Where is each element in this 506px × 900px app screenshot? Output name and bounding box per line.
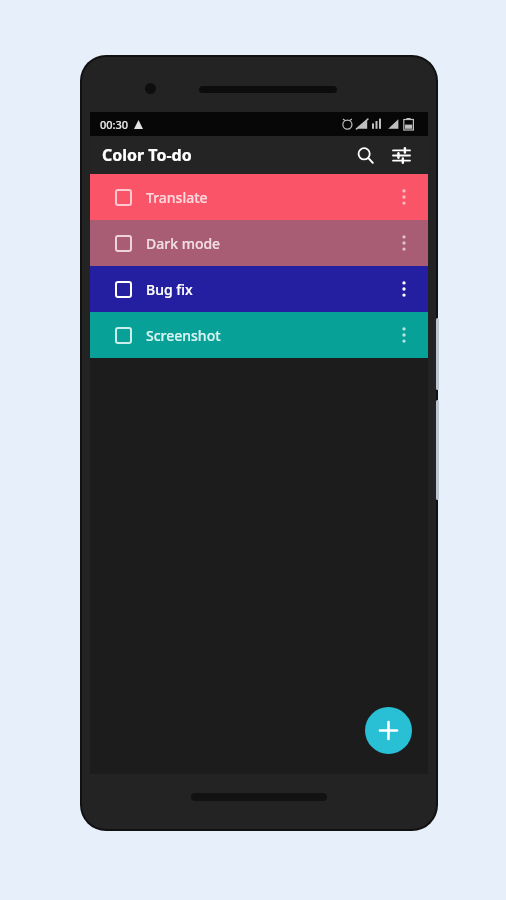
button[interactable]: Toggle Bug fix <box>90 266 428 312</box>
button[interactable]: Toggle Dark mode <box>108 228 138 258</box>
button[interactable]: Toggle Screenshot <box>108 320 138 350</box>
button[interactable]: Add task <box>365 707 412 754</box>
staticText: Color To-do <box>102 144 192 166</box>
staticText: Bug fix <box>146 280 193 299</box>
button[interactable]: Toggle Screenshot <box>90 312 428 358</box>
button[interactable]: Toggle Translate <box>90 174 428 220</box>
staticText: Translate <box>146 188 208 207</box>
button[interactable]: Toggle Dark mode <box>90 220 428 266</box>
staticText: 00:30 <box>100 117 129 132</box>
button[interactable]: More options for Translate <box>386 179 422 215</box>
button[interactable]: Filter <box>384 138 418 172</box>
button[interactable]: More options for Bug fix <box>386 271 422 307</box>
button[interactable]: Toggle Translate <box>108 182 138 212</box>
button[interactable]: More options for Dark mode <box>386 225 422 261</box>
staticText: Dark mode <box>146 234 221 253</box>
button[interactable]: More options for Screenshot <box>386 317 422 353</box>
button[interactable]: Search <box>348 138 382 172</box>
button[interactable]: Toggle Bug fix <box>108 274 138 304</box>
staticText: Screenshot <box>146 326 221 345</box>
